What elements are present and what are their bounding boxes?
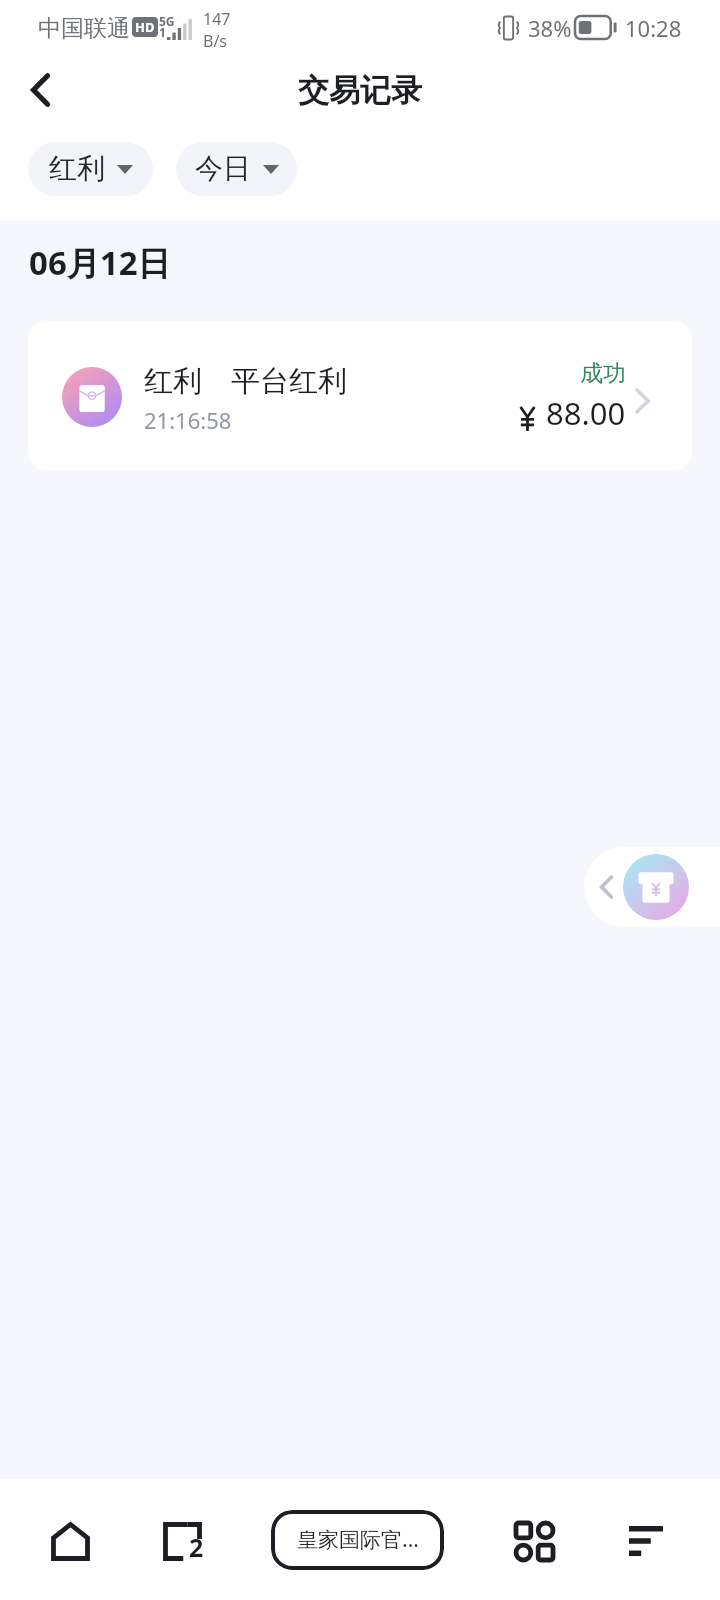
staticText: 38% [528, 13, 572, 43]
staticText: 21:16:58 [144, 405, 232, 435]
staticText: 皇家国际官... [297, 1525, 419, 1554]
button[interactable]: Menu [610, 1505, 682, 1577]
staticText: 交易记录 [298, 71, 422, 110]
button[interactable]: Apps [498, 1505, 570, 1577]
staticText: 红利 平台红利 [144, 360, 347, 400]
button[interactable]: 红利 [28, 142, 153, 196]
staticText: 5G [159, 13, 175, 29]
staticText: 成功 [580, 359, 626, 388]
staticText: 147 [203, 8, 231, 30]
button[interactable]: 皇家国际官... [271, 1510, 444, 1570]
staticText: 1 [159, 24, 166, 40]
button[interactable]: 红利 平台红利 [28, 321, 692, 470]
staticText: 2 [189, 1530, 204, 1564]
staticText: 88.00 [546, 392, 626, 434]
staticText: HD [135, 18, 155, 36]
staticText: 10:28 [625, 13, 682, 43]
button[interactable]: Home [34, 1505, 106, 1577]
button[interactable]: Back [12, 62, 68, 118]
button[interactable]: Tabs [146, 1505, 218, 1577]
staticText: 今日 [195, 151, 251, 186]
button[interactable]: 今日 [176, 142, 297, 196]
staticText: 06月12日 [29, 240, 171, 285]
staticText: 红利 [49, 151, 105, 186]
button[interactable]: Withdraw [584, 847, 720, 927]
staticText: B/s [203, 30, 228, 52]
staticText: 中国联通 [38, 14, 130, 43]
